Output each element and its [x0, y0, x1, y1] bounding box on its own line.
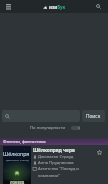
- staticText: Джонатан Страуд: [38, 154, 74, 160]
- staticText: ЛОКВУД: [10, 180, 25, 184]
- staticText: Поиск: [86, 113, 101, 120]
- button[interactable]: Favorite: [94, 147, 104, 157]
- button[interactable]: Search: [92, 0, 104, 13]
- button[interactable]: Sort toggle: [71, 126, 80, 130]
- button[interactable]: По популярности: [30, 125, 66, 131]
- button[interactable]: Шёлкопряд: [0, 146, 108, 184]
- staticText: Фэнтези, фантастика: [3, 139, 46, 145]
- staticText: Шёлкопряд черв: [33, 147, 75, 154]
- button[interactable]: Menu: [3, 0, 16, 13]
- button[interactable]: Search field: [2, 110, 80, 122]
- button[interactable]: Поиск: [82, 110, 105, 122]
- staticText: Шёлкопряд: [3, 150, 31, 157]
- staticText: ДЖОНАТАН СТРАУД: [6, 158, 29, 161]
- staticText: изиБук: [49, 4, 66, 10]
- staticText: Агентство "Локвуд и компания": [38, 166, 93, 178]
- staticText: Анна Прудникова: [38, 160, 74, 166]
- button[interactable]: Фэнтези, фантастика: [0, 138, 108, 145]
